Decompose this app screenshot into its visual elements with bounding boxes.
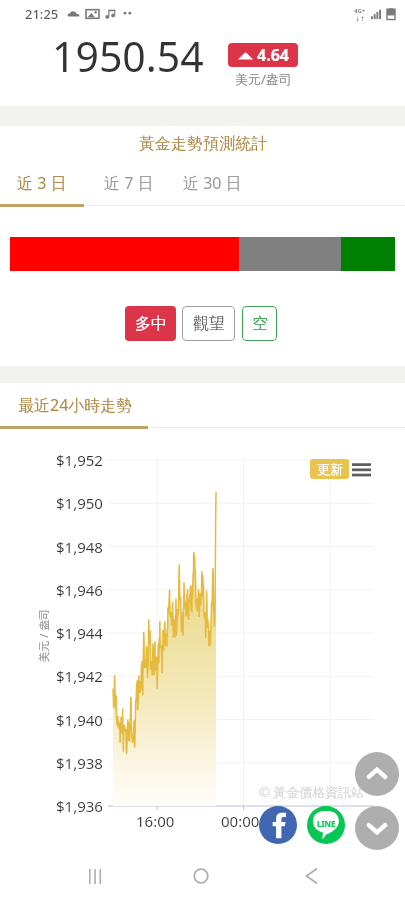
button[interactable]: 4.64	[228, 43, 298, 67]
button[interactable]: LINE	[307, 806, 345, 844]
button[interactable]: 近 3 日	[17, 172, 67, 194]
staticText: 多中	[135, 314, 167, 334]
staticText: © 黃金價格資訊站	[259, 783, 365, 801]
staticText: 空	[252, 314, 268, 334]
staticText: $1,940	[56, 710, 103, 730]
button[interactable]: 最近24小時走勢	[0, 392, 148, 430]
staticText: 觀望	[193, 314, 225, 334]
staticText: $1,942	[56, 666, 103, 686]
staticText: $1,952	[56, 450, 103, 470]
staticText: 21:25	[25, 5, 59, 23]
staticText: $1,950	[56, 493, 103, 513]
button[interactable]: Scroll up	[355, 752, 399, 796]
staticText: 更新	[317, 461, 343, 477]
button[interactable]: 觀望	[182, 306, 235, 341]
staticText: 4G+	[354, 7, 366, 15]
button[interactable]: 近 30 日	[183, 172, 242, 194]
button[interactable]: 多中	[125, 306, 176, 341]
staticText: $1,938	[56, 753, 103, 773]
button[interactable]: Facebook	[259, 806, 297, 844]
button[interactable]: Back	[278, 854, 344, 898]
button[interactable]: Menu	[352, 463, 371, 476]
staticText: 近 7 日	[104, 172, 154, 194]
staticText: 1950.54	[52, 28, 204, 84]
staticText: 近 30 日	[183, 172, 242, 194]
button[interactable]: Home	[168, 854, 234, 898]
staticText: 黃金走勢預測統計	[139, 134, 267, 154]
staticText: $1,936	[56, 796, 103, 816]
staticText: 近 3 日	[17, 172, 67, 194]
staticText: 美元 / 盎司	[35, 608, 50, 662]
staticText: LINE	[317, 818, 336, 829]
button[interactable]: Scroll down	[355, 806, 399, 850]
button[interactable]: 空	[242, 306, 277, 341]
staticText: $1,946	[56, 580, 103, 600]
button[interactable]: 近 7 日	[104, 172, 154, 194]
button[interactable]: 更新	[310, 459, 349, 479]
staticText: ↓↑	[355, 15, 366, 22]
staticText: $1,948	[56, 537, 103, 557]
staticText: 美元/盎司	[235, 70, 292, 88]
staticText: $1,944	[56, 623, 103, 643]
button[interactable]: Recents	[61, 854, 127, 898]
staticText: 4.64	[257, 44, 289, 66]
staticText: 16:00	[136, 811, 175, 831]
staticText: 00:00	[221, 811, 260, 831]
staticText: 最近24小時走勢	[18, 394, 133, 416]
